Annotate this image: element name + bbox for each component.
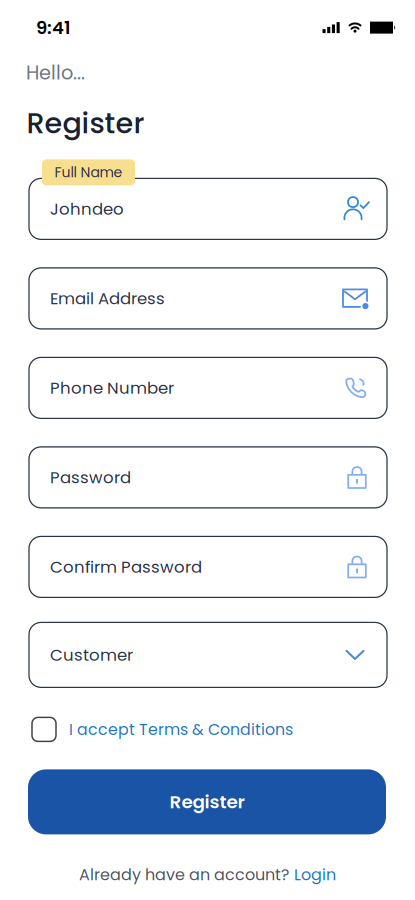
staticText: 9:41 [36, 15, 71, 40]
staticText: Register [26, 103, 144, 143]
button[interactable]: Register [28, 769, 386, 834]
staticText: Customer [50, 643, 133, 666]
staticText: Password [50, 466, 131, 489]
staticText: Confirm Password [50, 555, 202, 578]
button[interactable]: Login [294, 863, 336, 886]
button[interactable]: Customer [29, 622, 387, 687]
staticText: Phone Number [50, 376, 174, 399]
staticText: Already have an account? [79, 863, 289, 886]
button[interactable]: Email Address [29, 268, 387, 329]
staticText: Hello... [26, 59, 85, 86]
button[interactable]: Confirm Password [29, 536, 387, 597]
button[interactable]: Phone Number [29, 357, 387, 418]
staticText: Johndeo [50, 197, 124, 220]
button[interactable]: Johndeo [29, 178, 387, 239]
button[interactable]: I accept Terms & Conditions [32, 717, 293, 741]
staticText: Email Address [50, 287, 165, 310]
staticText: Login [294, 863, 336, 886]
button[interactable]: Password [29, 447, 387, 508]
staticText: Register [169, 789, 244, 815]
staticText: I accept Terms & Conditions [69, 718, 293, 740]
button[interactable]: Full Name [42, 159, 135, 185]
staticText: Full Name [54, 163, 122, 182]
